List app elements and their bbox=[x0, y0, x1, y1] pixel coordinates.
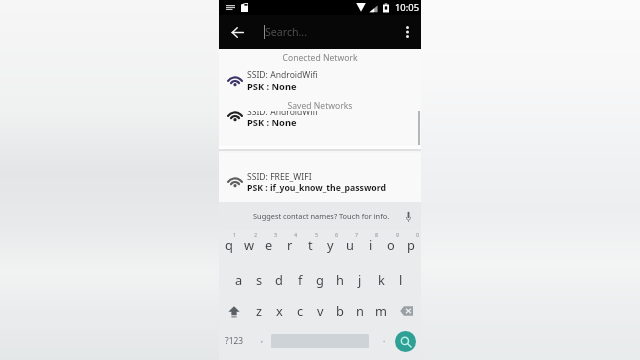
staticText: PSK : None bbox=[247, 80, 297, 93]
staticText: 4 bbox=[294, 231, 298, 238]
button[interactable] bbox=[249, 295, 269, 327]
staticText: n bbox=[356, 302, 364, 319]
button[interactable]: Voice input bbox=[405, 210, 412, 223]
staticText: j bbox=[358, 271, 362, 288]
button[interactable] bbox=[259, 231, 279, 263]
staticText: 6 bbox=[335, 231, 339, 238]
button[interactable] bbox=[350, 295, 370, 327]
staticText: w bbox=[244, 236, 255, 253]
staticText: 8 bbox=[375, 231, 379, 238]
staticText: g bbox=[316, 271, 324, 288]
button[interactable]: ?123 bbox=[219, 324, 267, 356]
button[interactable] bbox=[330, 263, 350, 295]
button[interactable]: Back bbox=[219, 15, 256, 49]
staticText: p bbox=[407, 236, 415, 253]
staticText: x bbox=[276, 302, 283, 319]
button[interactable]: SSID: AndroidWifi bbox=[219, 104, 421, 134]
staticText: 10:05 bbox=[395, 1, 420, 14]
button[interactable]: , bbox=[252, 324, 271, 356]
staticText: z bbox=[256, 302, 263, 319]
staticText: 0 bbox=[416, 231, 420, 238]
staticText: PSK : if_you_know_the_password bbox=[247, 182, 386, 194]
button[interactable] bbox=[371, 295, 391, 327]
button[interactable]: Backspace bbox=[392, 295, 421, 327]
button[interactable] bbox=[361, 231, 381, 263]
button[interactable] bbox=[300, 231, 320, 263]
staticText: 5 bbox=[315, 231, 319, 238]
button[interactable] bbox=[381, 231, 401, 263]
staticText: i bbox=[369, 236, 373, 253]
staticText: r bbox=[287, 236, 293, 253]
button[interactable] bbox=[279, 231, 299, 263]
staticText: Search... bbox=[265, 25, 308, 39]
staticText: e bbox=[265, 236, 273, 253]
staticText: SSID: FREE_WIFI bbox=[247, 171, 312, 183]
staticText: 7 bbox=[355, 231, 359, 238]
button[interactable] bbox=[229, 263, 249, 295]
staticText: SSID: AndroidWifi bbox=[247, 69, 318, 81]
staticText: Saved Networks bbox=[219, 100, 421, 112]
staticText: c bbox=[297, 302, 304, 319]
staticText: u bbox=[346, 236, 354, 253]
staticText: SSID: AndroidWifi bbox=[247, 106, 318, 118]
button[interactable] bbox=[269, 295, 289, 327]
staticText: s bbox=[256, 271, 263, 288]
staticText: b bbox=[336, 302, 344, 319]
button[interactable]: Shift bbox=[219, 295, 248, 327]
staticText: f bbox=[298, 271, 303, 288]
staticText: v bbox=[317, 302, 324, 319]
button[interactable] bbox=[330, 295, 350, 327]
button[interactable] bbox=[391, 263, 411, 295]
staticText: q bbox=[225, 236, 233, 253]
button[interactable] bbox=[249, 263, 269, 295]
button[interactable] bbox=[350, 263, 370, 295]
button[interactable]: Search bbox=[395, 331, 416, 352]
staticText: 9 bbox=[396, 231, 400, 238]
staticText: m bbox=[375, 302, 387, 319]
staticText: PSK : None bbox=[247, 116, 297, 129]
staticText: ?123 bbox=[225, 335, 244, 346]
staticText: o bbox=[387, 236, 395, 253]
button[interactable] bbox=[310, 263, 330, 295]
staticText: . bbox=[383, 333, 386, 344]
button[interactable] bbox=[310, 295, 330, 327]
button[interactable] bbox=[271, 324, 379, 356]
staticText: d bbox=[275, 271, 283, 288]
staticText: Suggest contact names? Touch for info. bbox=[253, 211, 390, 221]
button[interactable] bbox=[289, 295, 309, 327]
staticText: a bbox=[235, 271, 243, 288]
staticText: 2 bbox=[254, 231, 258, 238]
staticText: l bbox=[399, 271, 403, 288]
button[interactable] bbox=[371, 263, 391, 295]
button[interactable]: SSID: FREE_WIFI bbox=[219, 167, 421, 197]
button[interactable] bbox=[401, 231, 421, 263]
staticText: t bbox=[308, 236, 313, 253]
staticText: y bbox=[327, 236, 334, 253]
staticText: k bbox=[378, 271, 385, 288]
button[interactable] bbox=[340, 231, 360, 263]
staticText: , bbox=[261, 333, 264, 344]
staticText: Conected Network bbox=[219, 52, 421, 64]
staticText: 1 bbox=[233, 231, 237, 238]
button[interactable] bbox=[239, 231, 259, 263]
button[interactable] bbox=[320, 231, 340, 263]
staticText: 3 bbox=[274, 231, 278, 238]
button[interactable] bbox=[290, 263, 310, 295]
button[interactable] bbox=[269, 263, 289, 295]
button[interactable]: SSID: AndroidWifi bbox=[219, 65, 421, 95]
staticText: h bbox=[336, 271, 344, 288]
button[interactable] bbox=[219, 231, 239, 263]
button[interactable]: More options bbox=[397, 15, 417, 49]
